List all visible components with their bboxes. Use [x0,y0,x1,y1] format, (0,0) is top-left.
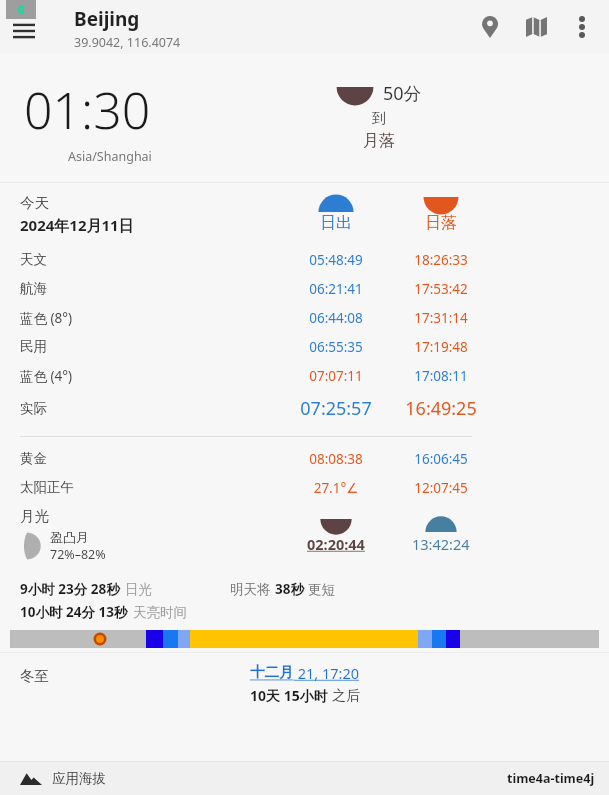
staticText: 01:30 [24,76,151,144]
button[interactable]: 太阳正午 [0,473,609,502]
staticText: 16:49:25 [389,396,493,421]
staticText: 月光 [20,507,49,525]
button[interactable]: More options [559,4,605,50]
staticText: 应用海拔 [52,770,106,787]
staticText: 9小时 23分 28秒 [20,580,120,598]
button[interactable] [10,630,599,652]
staticText: 航海 [20,280,47,297]
staticText: 18:26:33 [389,251,493,269]
staticText: 07:25:57 [284,396,388,421]
staticText: 06:21:41 [284,280,388,298]
staticText: 天文 [20,251,47,268]
staticText: 今天 [20,194,49,212]
button[interactable]: 民用 [0,332,609,361]
staticText: 72%–82% [50,546,106,563]
staticText: 民用 [20,338,47,355]
button[interactable]: 黄金 [0,444,609,473]
button[interactable]: Location [467,4,513,50]
button[interactable]: Navigation menu [0,7,48,55]
staticText: 到 [372,110,386,128]
staticText: 08:08:38 [284,450,388,468]
staticText: 39.9042, 116.4074 [74,34,181,51]
staticText: time4a-time4j [507,770,595,787]
staticText: 27.1°∠ [284,479,388,497]
staticText: 更短 [308,581,335,598]
staticText: 06:44:08 [284,309,388,327]
staticText: 月落 [363,131,395,151]
staticText: 05:48:49 [284,251,388,269]
staticText: 日出 [320,213,352,233]
staticText: Asia/Shanghai [68,148,152,165]
button[interactable]: 日落 [389,196,493,233]
button[interactable]: 蓝色 (8°) [0,303,609,332]
staticText: 13:42:24 [412,534,470,554]
staticText: 38秒 [275,580,304,598]
staticText: 日光 [125,581,152,598]
button[interactable]: 月光 [0,502,609,574]
staticText: 17:08:11 [389,367,493,385]
staticText: 之后 [332,687,360,705]
staticText: 十二月 [250,663,294,681]
staticText: 蓝色 (4°) [20,367,73,385]
staticText: 10天 15小时 [250,686,328,705]
staticText: Beijing [74,6,140,32]
button[interactable]: 日出 [284,196,388,233]
staticText: 06:55:35 [284,338,388,356]
staticText: 日落 [425,213,457,233]
staticText: 17:31:14 [389,309,493,327]
button[interactable]: 天文 [0,245,609,274]
staticText: 12:07:45 [389,479,493,497]
staticText: 实际 [20,400,47,417]
staticText: 02:20:44 [307,534,365,554]
staticText: 明天将 [230,581,271,598]
button[interactable]: 航海 [0,274,609,303]
staticText: 盈凸月 [50,529,89,545]
button[interactable]: 冬至 [0,653,609,721]
staticText: 21, 17:20 [294,663,360,683]
staticText: 蓝色 (8°) [20,309,73,327]
button[interactable]: 蓝色 (4°) [0,361,609,390]
staticText: 太阳正午 [20,479,74,496]
staticText: 天亮时间 [133,604,187,621]
button[interactable]: 应用海拔 [0,762,609,795]
staticText: 17:53:42 [389,280,493,298]
staticText: 冬至 [20,667,49,685]
button[interactable]: 实际 [0,390,609,426]
staticText: 50分 [383,81,422,106]
staticText: 黄金 [20,450,47,467]
staticText: 2024年12月11日 [20,215,134,235]
staticText: 16:06:45 [389,450,493,468]
staticText: 07:07:11 [284,367,388,385]
button[interactable]: Map [513,4,559,50]
staticText: 0 [18,2,25,17]
staticText: 10小时 24分 13秒 [20,603,128,621]
staticText: 17:19:48 [389,338,493,356]
